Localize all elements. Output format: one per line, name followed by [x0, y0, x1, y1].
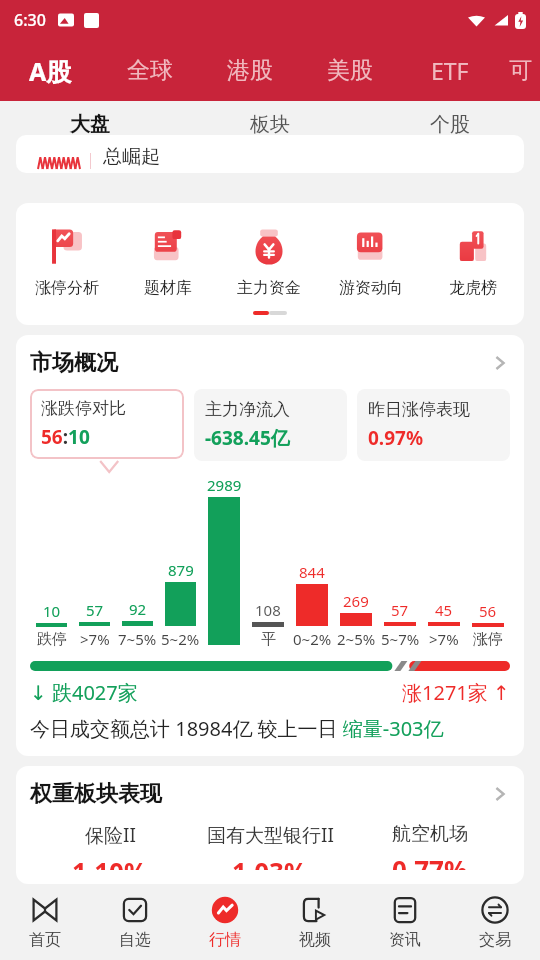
- button[interactable]: A股: [0, 40, 100, 101]
- staticText: 可: [509, 56, 532, 85]
- button[interactable]: 美股: [300, 40, 400, 101]
- staticText: 昨日涨停表现: [368, 399, 470, 420]
- staticText: 龙虎榜: [449, 278, 497, 298]
- staticText: 题材库: [144, 278, 192, 298]
- staticText: 资讯: [389, 930, 421, 950]
- staticText: 涨跌停对比: [41, 398, 126, 419]
- staticText: 0~2%: [293, 629, 332, 649]
- button[interactable]: 交易: [450, 884, 540, 960]
- button[interactable]: 总崛起: [16, 135, 524, 173]
- staticText: A股: [29, 54, 72, 88]
- staticText: -638.45亿: [205, 425, 290, 451]
- staticText: 涨停分析: [35, 278, 99, 298]
- staticText: 844: [299, 562, 325, 582]
- button[interactable]: 题材库: [117, 225, 218, 298]
- staticText: 游资动向: [339, 278, 403, 298]
- button[interactable]: 市场概况: [30, 349, 510, 377]
- staticText: 56: [479, 601, 497, 621]
- staticText: ↓ 跌4027家: [30, 679, 138, 706]
- button[interactable]: 昨日涨停表现: [357, 389, 510, 461]
- button[interactable]: 龙虎榜: [422, 225, 524, 298]
- staticText: 今日成交额总计 18984亿 较上一日 缩量-303亿: [30, 715, 444, 742]
- staticText: 航空机场: [392, 822, 468, 846]
- button[interactable]: 权重板块表现: [30, 780, 510, 808]
- button[interactable]: 保险II: [30, 822, 190, 870]
- staticText: 主力资金: [237, 278, 301, 298]
- button[interactable]: 涨停分析: [16, 225, 117, 298]
- staticText: 交易: [479, 930, 511, 950]
- staticText: 市场概况: [30, 349, 118, 377]
- staticText: 2~5%: [337, 629, 376, 649]
- staticText: 涨停: [473, 630, 503, 649]
- staticText: ETF: [431, 55, 469, 86]
- button[interactable]: 资讯: [360, 884, 450, 960]
- staticText: >7%: [429, 629, 459, 649]
- button[interactable]: 可: [500, 40, 540, 101]
- staticText: 自选: [119, 930, 151, 950]
- staticText: 0.77%: [392, 852, 468, 870]
- button[interactable]: 全球: [100, 40, 200, 101]
- staticText: 港股: [227, 56, 273, 85]
- staticText: 108: [255, 600, 281, 620]
- button[interactable]: 板块: [180, 101, 360, 157]
- button[interactable]: 大盘: [0, 101, 180, 157]
- staticText: 大盘: [70, 112, 110, 137]
- staticText: 879: [168, 560, 194, 580]
- staticText: 全球: [127, 56, 173, 85]
- staticText: 视频: [299, 930, 331, 950]
- staticText: >7%: [80, 629, 110, 649]
- staticText: 国有大型银行II: [207, 822, 334, 848]
- staticText: 57: [86, 600, 104, 620]
- button[interactable]: 首页: [0, 884, 90, 960]
- staticText: 45: [435, 600, 453, 620]
- button[interactable]: 港股: [200, 40, 300, 101]
- staticText: 板块: [250, 112, 290, 137]
- staticText: 平: [261, 630, 276, 649]
- staticText: 56:10: [41, 424, 90, 450]
- staticText: 92: [129, 599, 147, 619]
- staticText: 7~5%: [118, 629, 157, 649]
- staticText: 6:30: [14, 9, 46, 31]
- staticText: 首页: [29, 930, 61, 950]
- button[interactable]: 主力净流入: [194, 389, 347, 461]
- button[interactable]: 国有大型银行II: [190, 822, 350, 870]
- staticText: 跌停: [37, 630, 67, 649]
- staticText: 主力净流入: [205, 399, 290, 420]
- staticText: 1.10%: [72, 854, 148, 870]
- button[interactable]: 游资动向: [320, 225, 422, 298]
- button[interactable]: 主力资金: [218, 225, 320, 298]
- button[interactable]: 自选: [90, 884, 180, 960]
- staticText: 2989: [207, 475, 242, 495]
- staticText: 1.03%: [232, 854, 308, 870]
- button[interactable]: ETF: [400, 40, 500, 101]
- staticText: 个股: [430, 112, 470, 137]
- staticText: 0.97%: [368, 425, 424, 451]
- button[interactable]: 航空机场: [350, 822, 510, 870]
- staticText: 总崛起: [103, 145, 160, 169]
- staticText: 10: [43, 601, 61, 621]
- button[interactable]: 个股: [360, 101, 540, 157]
- staticText: 5~7%: [381, 629, 420, 649]
- staticText: 美股: [327, 56, 373, 85]
- button[interactable]: 行情: [180, 884, 270, 960]
- staticText: 保险II: [85, 822, 136, 848]
- staticText: 行情: [209, 930, 241, 950]
- staticText: 57: [391, 600, 409, 620]
- staticText: 269: [343, 591, 369, 611]
- staticText: 涨1271家 ↑: [402, 679, 510, 706]
- button[interactable]: 视频: [270, 884, 360, 960]
- staticText: 5~2%: [161, 629, 200, 649]
- staticText: 权重板块表现: [30, 780, 162, 808]
- button[interactable]: 涨跌停对比: [30, 389, 184, 459]
